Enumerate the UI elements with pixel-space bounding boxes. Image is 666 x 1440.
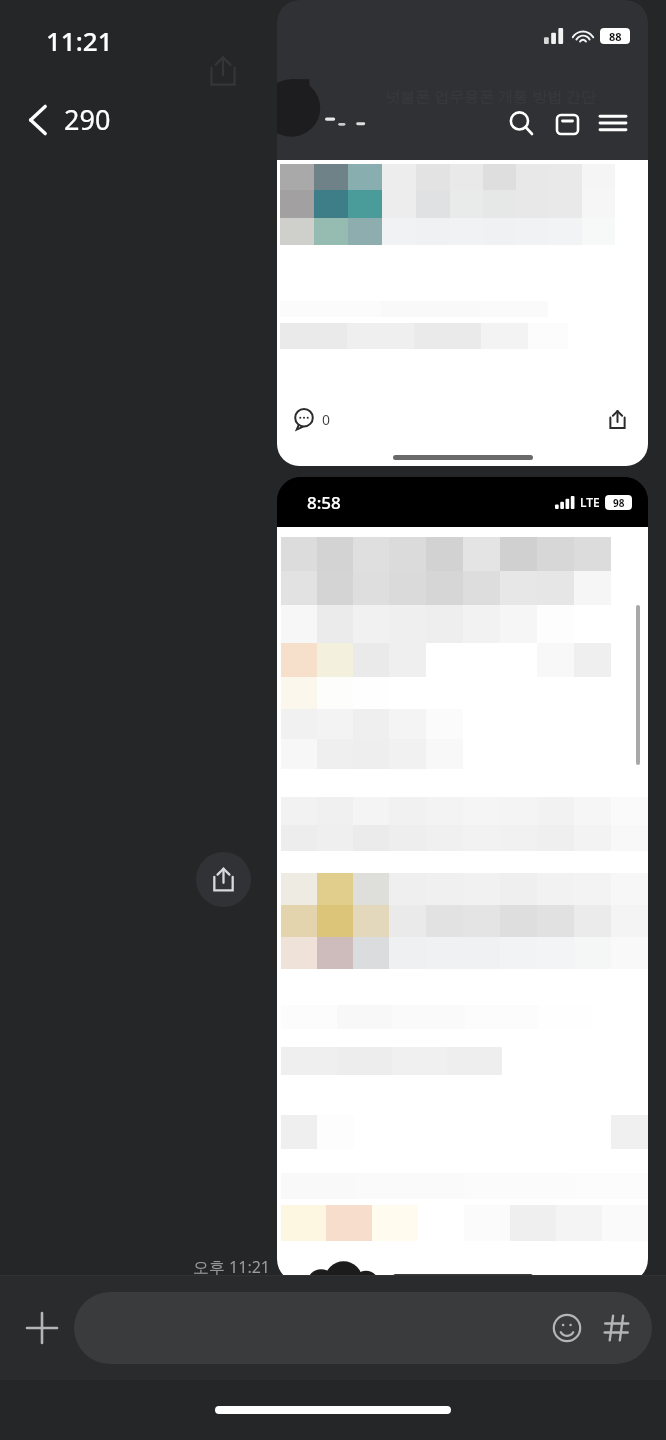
button[interactable]: Emoji [74, 1292, 652, 1364]
button[interactable]: Archive [544, 100, 590, 146]
button[interactable]: Share [602, 404, 632, 434]
button[interactable]: Emoji [544, 1305, 590, 1351]
button[interactable]: Share [196, 852, 251, 907]
button[interactable]: 0 [293, 408, 331, 430]
staticText: 8:58 [307, 491, 341, 514]
button[interactable]: 88 [277, 0, 648, 466]
staticText: 290 [64, 101, 111, 138]
staticText: 11:21 [46, 23, 113, 58]
staticText: 88 [609, 29, 622, 44]
button[interactable]: Hashtag [594, 1305, 640, 1351]
button[interactable]: 8:58 [277, 477, 648, 1283]
button[interactable]: Add attachment [14, 1300, 70, 1356]
staticText: 0 [322, 410, 331, 429]
staticText: 오후 11:21 [192, 1256, 270, 1278]
staticText: 98 [613, 496, 625, 510]
button[interactable]: Menu [590, 100, 636, 146]
button[interactable]: 290 [22, 95, 117, 144]
staticText: LTE [580, 494, 600, 510]
button[interactable]: Search [498, 100, 544, 146]
